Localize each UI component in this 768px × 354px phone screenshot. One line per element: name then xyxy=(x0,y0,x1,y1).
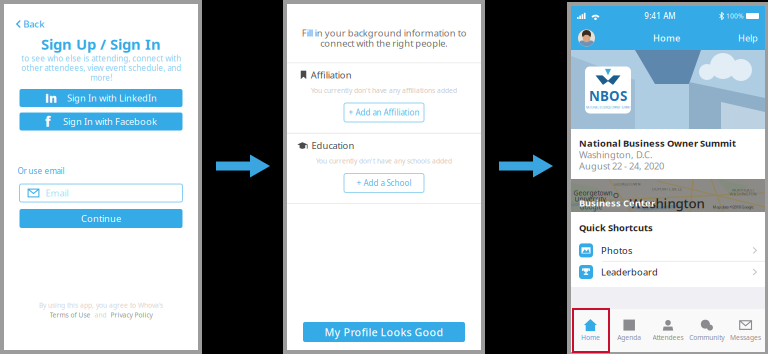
button[interactable]: Agenda xyxy=(610,309,649,352)
staticText: and xyxy=(94,310,106,319)
staticText: University xyxy=(574,195,605,203)
staticText: Sign In with Facebook xyxy=(63,115,157,128)
staticText: Agenda xyxy=(617,333,641,342)
staticText: Back xyxy=(23,18,44,30)
staticText: Map data ©2018 Google xyxy=(712,204,753,210)
staticText: + Add a School xyxy=(356,178,411,188)
button[interactable]: Home xyxy=(571,309,610,352)
button[interactable]: Photos xyxy=(571,240,765,261)
button[interactable]: Back xyxy=(12,15,48,33)
staticText: Help xyxy=(738,32,758,44)
button[interactable]: in xyxy=(19,89,182,107)
staticText: Sign Up / Sign In xyxy=(41,34,161,54)
staticText: By using this app, you agree to Whova's xyxy=(39,301,163,309)
staticText: GEORGETOWN xyxy=(613,181,640,187)
staticText: WASHINGTON xyxy=(729,191,756,197)
staticText: 9:41 AM xyxy=(644,11,675,21)
button[interactable]: Attendees xyxy=(649,309,687,352)
button[interactable]: Terms of Use xyxy=(49,310,90,319)
staticText: + Add an Affiliation xyxy=(348,107,419,118)
button[interactable]: + Add an Affiliation xyxy=(344,103,424,122)
staticText: Terms of Use xyxy=(49,310,90,319)
staticText: Fill in your background information to c… xyxy=(301,27,466,49)
staticText: August 22 - 24, 2020 xyxy=(579,160,664,172)
staticText: Business Center xyxy=(579,197,655,209)
button[interactable]: + Add a School xyxy=(344,173,424,192)
staticText: in xyxy=(45,90,57,106)
button[interactable]: f xyxy=(19,112,182,130)
button[interactable]: Community xyxy=(687,309,726,352)
staticText: Or use email xyxy=(17,166,64,176)
staticText: Messages xyxy=(730,333,761,342)
staticText: Home xyxy=(581,333,600,342)
staticText: Quick Shortcuts xyxy=(579,221,653,234)
button[interactable]: Profile xyxy=(578,29,595,46)
staticText: Education xyxy=(312,139,355,152)
button[interactable]: My Profile Looks Good xyxy=(303,322,465,342)
staticText: Georgetown xyxy=(573,189,612,197)
button[interactable]: Privacy Policy xyxy=(110,310,152,319)
staticText: Email xyxy=(45,187,68,199)
button[interactable]: Continue xyxy=(19,209,182,228)
staticText: Privacy Policy xyxy=(110,310,152,319)
staticText: to see who else is attending, connect wi… xyxy=(21,53,181,83)
button[interactable]: Messages xyxy=(726,309,765,352)
staticText: Washington xyxy=(629,194,704,212)
staticText: You currently don't have any schools add… xyxy=(316,157,452,165)
staticText: Leaderboard xyxy=(601,266,658,278)
staticText: You currently don't have any affiliation… xyxy=(311,86,457,95)
staticText: Washington, D.C. xyxy=(579,148,653,161)
staticText: Attendees xyxy=(652,333,683,342)
staticText: 100% xyxy=(726,12,744,20)
staticText: DUPONT CIRCLE xyxy=(652,186,682,192)
staticText: Google xyxy=(579,203,602,211)
staticText: National Business Owner Summit xyxy=(579,137,736,149)
button[interactable]: Help xyxy=(738,32,758,44)
staticText: NORTHEAST xyxy=(732,187,754,193)
staticText: Community xyxy=(689,333,724,342)
staticText: Home xyxy=(653,32,680,44)
button[interactable]: Leaderboard xyxy=(571,261,765,282)
staticText: My Profile Looks Good xyxy=(324,325,443,339)
staticText: NBOS xyxy=(589,87,627,105)
staticText: f xyxy=(45,113,51,130)
staticText: NATIONAL BUSINESS OWNER SUMMIT xyxy=(585,106,630,109)
staticText: Affiliation xyxy=(311,69,352,81)
staticText: Photos xyxy=(601,244,632,257)
staticText: Continue xyxy=(81,212,121,225)
staticText: Sign In with LinkedIn xyxy=(67,92,157,104)
